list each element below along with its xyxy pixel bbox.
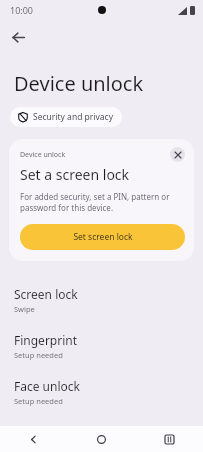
button[interactable]: Screen lock — [0, 277, 203, 323]
staticText: Face unlock — [14, 378, 80, 394]
button[interactable]: Home — [67, 426, 135, 452]
staticText: Screen lock — [14, 286, 78, 302]
staticText: For added security, set a PIN, pattern o… — [20, 191, 185, 214]
button[interactable]: Dismiss — [170, 147, 185, 162]
staticText: Device unlock — [14, 70, 144, 97]
button[interactable]: Fingerprint — [0, 323, 203, 369]
staticText: 10:00 — [10, 4, 34, 16]
button[interactable]: Back — [0, 426, 67, 452]
staticText: Set screen lock — [73, 231, 133, 243]
button[interactable]: Set screen lock — [20, 224, 185, 250]
staticText: Fingerprint — [14, 332, 78, 348]
button[interactable]: Security and privacy — [10, 107, 122, 127]
button[interactable]: Back — [4, 23, 32, 51]
staticText: Setup needed — [14, 350, 63, 360]
button[interactable]: Face unlock — [0, 369, 203, 415]
staticText: Setup needed — [14, 396, 63, 406]
staticText: Device unlock — [20, 150, 170, 160]
staticText: Security and privacy — [33, 111, 114, 123]
button[interactable]: Recent apps — [135, 426, 203, 452]
staticText: Swipe — [14, 304, 35, 314]
staticText: Set a screen lock — [20, 165, 130, 184]
